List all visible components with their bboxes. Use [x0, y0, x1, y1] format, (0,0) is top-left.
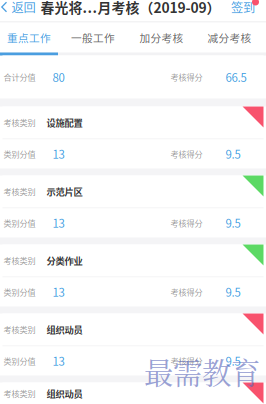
button[interactable]: 一般工作 [58, 22, 128, 52]
staticText: 分类作业 [46, 254, 82, 267]
button[interactable]: 考核类别 [2, 313, 263, 375]
button[interactable]: 考核类别 [2, 106, 263, 168]
staticText: 组织动员 [46, 387, 82, 400]
staticText: 重点工作 [7, 30, 51, 45]
staticText: 考核得分 [170, 217, 202, 229]
button[interactable]: 签到 [231, 0, 266, 14]
staticText: 13 [52, 145, 64, 162]
staticText: 考核得分 [170, 355, 202, 367]
staticText: 合计分值 [3, 71, 35, 83]
staticText: 考核得分 [170, 286, 202, 298]
staticText: 加分考核 [139, 30, 183, 45]
staticText: 9.5 [225, 214, 240, 231]
staticText: 签到 [231, 0, 255, 16]
button[interactable]: 考核类别 [2, 175, 263, 237]
staticText: 组织动员 [46, 323, 82, 336]
staticText: 一般工作 [71, 30, 115, 45]
button[interactable]: 减分考核 [195, 22, 264, 52]
staticText: 返回 [11, 0, 35, 16]
staticText: 考核类别 [3, 255, 35, 266]
staticText: 春光将...月考核（2019-09） [40, 0, 220, 17]
staticText: 考核得分 [170, 148, 202, 160]
staticText: 13 [52, 352, 64, 369]
staticText: 减分考核 [207, 30, 251, 45]
button[interactable]: 考核类别 [2, 244, 263, 306]
staticText: 66.5 [225, 69, 246, 85]
staticText: 13 [52, 283, 64, 300]
staticText: 最需教育 [144, 350, 260, 392]
staticText: 9.5 [225, 283, 240, 300]
staticText: 类别分值 [3, 217, 35, 229]
staticText: 9.5 [225, 145, 240, 162]
staticText: 设施配置 [46, 116, 82, 129]
staticText: 类别分值 [3, 355, 35, 367]
staticText: 13 [52, 214, 64, 231]
staticText: 考核得分 [170, 71, 202, 83]
button[interactable]: 考核类别 [2, 382, 263, 404]
staticText: 考核类别 [3, 388, 35, 399]
button[interactable]: 返回 [0, 0, 35, 14]
staticText: 类别分值 [3, 148, 35, 160]
staticText: 9.5 [225, 352, 240, 369]
staticText: 类别分值 [3, 286, 35, 298]
staticText: 考核类别 [3, 186, 35, 197]
staticText: 示范片区 [46, 185, 82, 198]
staticText: 80 [52, 69, 64, 85]
button[interactable]: 重点工作 [0, 22, 58, 52]
staticText: 考核类别 [3, 117, 35, 128]
button[interactable]: 加分考核 [128, 22, 195, 52]
staticText: 考核类别 [3, 324, 35, 335]
